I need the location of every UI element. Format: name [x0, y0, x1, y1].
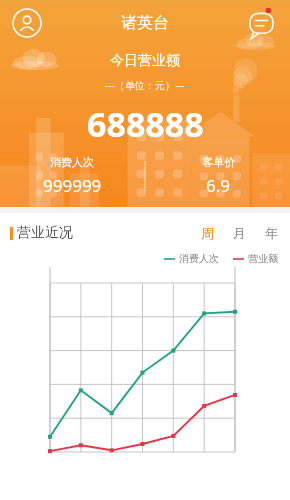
staticText: 999999 — [43, 174, 102, 197]
staticText: 周 — [201, 225, 214, 241]
button[interactable]: 消费人次 — [164, 252, 219, 265]
staticText: ---（单位：元）--- — [105, 78, 185, 92]
button[interactable]: Messages — [248, 7, 280, 39]
button[interactable]: 年 — [263, 223, 280, 243]
staticText: 月 — [233, 225, 246, 241]
button[interactable]: 周 — [199, 223, 216, 243]
button[interactable]: 月 — [231, 223, 248, 243]
button[interactable]: Profile — [10, 6, 44, 40]
button[interactable]: 客单价 — [146, 155, 290, 197]
staticText: 年 — [265, 225, 278, 241]
staticText: 今日营业额 — [110, 52, 180, 70]
staticText: 营业近况 — [17, 224, 73, 242]
staticText: 消费人次 — [50, 155, 94, 169]
staticText: 营业额 — [248, 252, 278, 265]
button[interactable]: 营业额 — [233, 252, 278, 265]
button[interactable]: 消费人次 — [0, 155, 144, 197]
staticText: 客单价 — [202, 155, 235, 169]
staticText: 诸英台 — [121, 13, 169, 33]
staticText: 6.9 — [206, 174, 231, 197]
staticText: 688888 — [87, 101, 204, 147]
staticText: 消费人次 — [179, 252, 219, 265]
